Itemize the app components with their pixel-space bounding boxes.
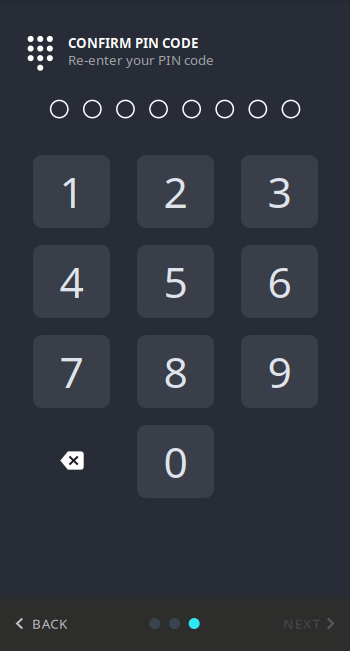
button[interactable]: 0	[137, 425, 214, 498]
staticText: Re-enter your PIN code	[68, 51, 214, 69]
button[interactable]: 3	[241, 155, 318, 228]
button[interactable]: 5	[137, 245, 214, 318]
staticText: 0	[163, 433, 187, 490]
button[interactable]: 6	[241, 245, 318, 318]
button[interactable]: 2	[137, 155, 214, 228]
button[interactable]: Delete	[33, 425, 110, 498]
button[interactable]: BACK	[0, 597, 81, 650]
staticText: 6	[267, 253, 291, 310]
staticText: 5	[163, 253, 187, 310]
staticText: 2	[163, 163, 187, 220]
staticText: 8	[163, 343, 187, 400]
staticText: NEXT	[283, 615, 320, 632]
button[interactable]: 7	[33, 335, 110, 408]
staticText: 1	[59, 163, 83, 220]
button[interactable]: 1	[33, 155, 110, 228]
button[interactable]: 8	[137, 335, 214, 408]
button[interactable]: 9	[241, 335, 318, 408]
staticText: 9	[267, 343, 291, 400]
staticText: 3	[267, 163, 291, 220]
staticText: 4	[59, 253, 83, 310]
button[interactable]: NEXT	[269, 597, 350, 650]
button[interactable]: 4	[33, 245, 110, 318]
staticText: BACK	[32, 615, 67, 632]
staticText: CONFIRM PIN CODE	[68, 34, 198, 52]
staticText: 7	[59, 343, 83, 400]
